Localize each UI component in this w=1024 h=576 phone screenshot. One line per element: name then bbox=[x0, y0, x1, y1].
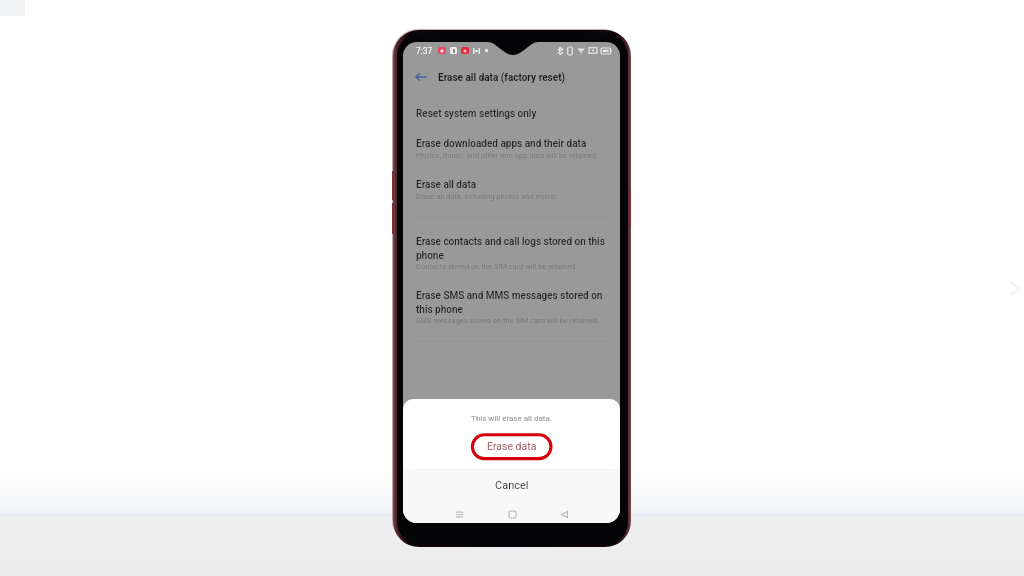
staticText: Reset system settings only bbox=[416, 108, 537, 120]
button[interactable]: Back bbox=[411, 68, 431, 86]
staticText: 7:37 bbox=[416, 46, 433, 56]
button[interactable]: Erase all data bbox=[416, 179, 612, 201]
button[interactable]: Back bbox=[556, 506, 572, 522]
button[interactable]: Recent apps bbox=[451, 506, 467, 522]
button[interactable]: Home bbox=[504, 506, 520, 522]
staticText: This will erase all data. bbox=[403, 414, 620, 423]
button[interactable]: Next bbox=[1004, 276, 1024, 302]
staticText: Erase downloaded apps and their data bbox=[416, 138, 587, 150]
button[interactable]: Erase data bbox=[443, 437, 580, 455]
button[interactable]: Erase downloaded apps and their data bbox=[416, 138, 612, 160]
staticText: SMS messages stored on the SIM card will… bbox=[416, 316, 599, 325]
staticText: Erase contacts and call logs stored on t… bbox=[416, 236, 612, 261]
staticText: Erase SMS and MMS messages stored on thi… bbox=[416, 290, 612, 315]
button[interactable]: Reset system settings only bbox=[416, 108, 612, 124]
staticText: Cancel bbox=[495, 479, 529, 492]
staticText: Erase all data bbox=[416, 179, 477, 191]
staticText: Photos, music, and other non-app data wi… bbox=[416, 151, 599, 160]
staticText: Erase all data (factory reset) bbox=[438, 72, 566, 84]
staticText: Erase all data, including photos and mus… bbox=[416, 192, 558, 201]
staticText: Erase data bbox=[487, 440, 537, 452]
button[interactable]: Cancel bbox=[403, 476, 620, 494]
staticText: Contacts stored on the SIM card will be … bbox=[416, 262, 578, 271]
button[interactable]: Erase SMS and MMS messages stored on thi… bbox=[416, 290, 612, 325]
button[interactable]: Erase contacts and call logs stored on t… bbox=[416, 236, 612, 271]
